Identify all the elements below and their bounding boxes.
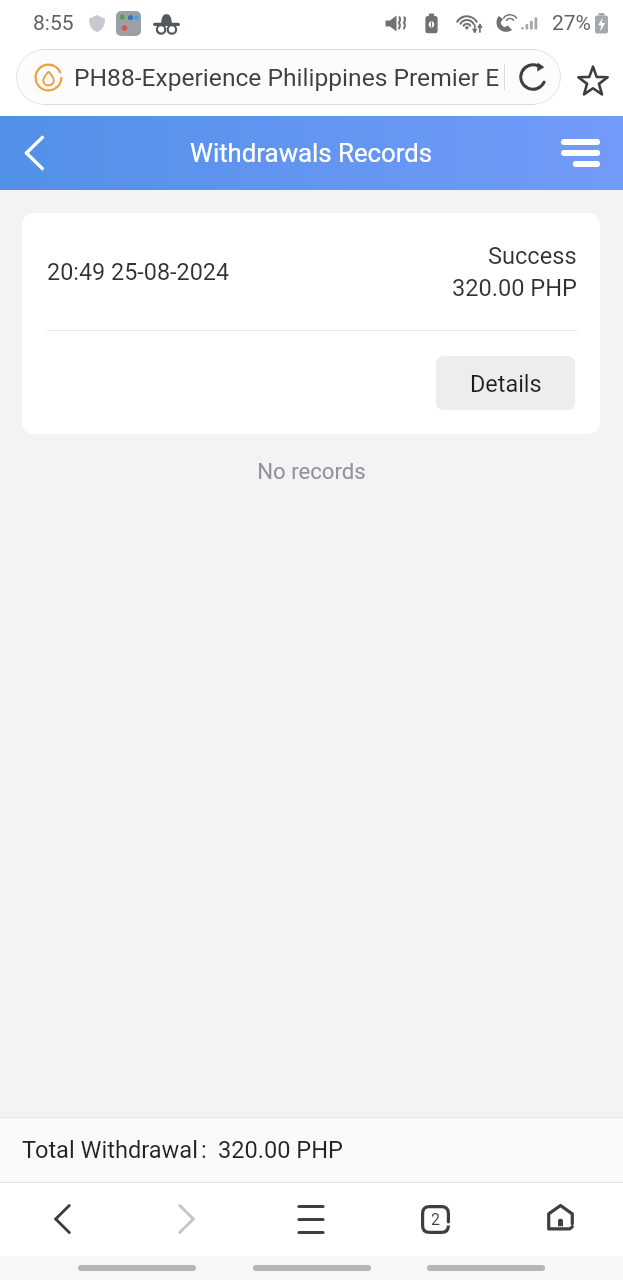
- staticText: Details: [470, 370, 542, 397]
- button[interactable]: Menu: [248, 1182, 373, 1256]
- staticText: 320.00 PHP: [452, 274, 577, 302]
- button[interactable]: Back: [0, 119, 68, 187]
- button[interactable]: Tabs: [373, 1182, 498, 1256]
- button[interactable]: Details: [436, 356, 575, 410]
- staticText: :: [201, 1136, 207, 1164]
- staticText: Success: [488, 242, 577, 270]
- button[interactable]: Bookmark: [569, 57, 617, 105]
- staticText: Total Withdrawal: [22, 1136, 198, 1164]
- button[interactable]: Back: [0, 1182, 124, 1256]
- button[interactable]: Menu: [546, 119, 614, 187]
- staticText: 2: [431, 1210, 440, 1229]
- button[interactable]: PH88-Experience Philippines Premier E: [16, 49, 561, 105]
- staticText: PH88-Experience Philippines Premier E: [74, 63, 500, 92]
- staticText: 20:49 25-08-2024: [47, 258, 230, 285]
- staticText: No records: [0, 458, 623, 484]
- staticText: 27%: [552, 11, 591, 36]
- staticText: 320.00 PHP: [218, 1136, 343, 1164]
- button[interactable]: Reload: [505, 49, 561, 105]
- staticText: 8:55: [33, 11, 74, 36]
- staticText: Withdrawals Records: [190, 138, 433, 168]
- button[interactable]: Forward: [124, 1182, 248, 1256]
- button[interactable]: Home: [498, 1182, 623, 1256]
